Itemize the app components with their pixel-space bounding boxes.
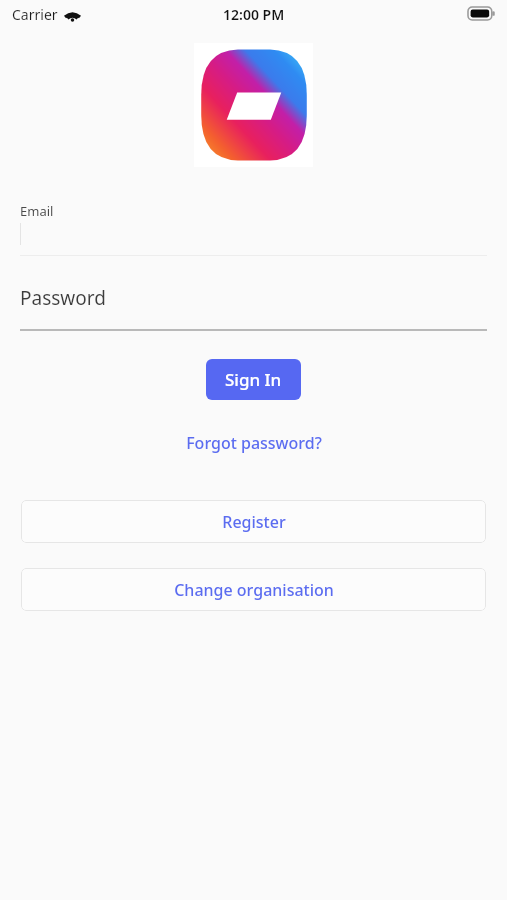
staticText: Forgot password? <box>186 432 322 454</box>
button[interactable]: Email <box>20 196 487 255</box>
other: Battery full <box>468 7 495 20</box>
staticText: Email <box>20 202 54 220</box>
button[interactable]: Register <box>21 500 486 543</box>
staticText: Change organisation <box>174 579 334 601</box>
staticText: Register <box>222 511 286 533</box>
other: Wi-Fi <box>65 8 80 23</box>
button[interactable]: Change organisation <box>21 568 486 611</box>
other: App logo <box>196 46 312 164</box>
staticText: 12:00 PM <box>223 5 285 24</box>
staticText: Carrier <box>12 5 58 24</box>
staticText: Password <box>20 285 106 311</box>
button[interactable]: Sign In <box>206 359 301 400</box>
staticText: Sign In <box>225 368 282 391</box>
button[interactable]: Forgot password? <box>0 428 507 458</box>
button[interactable]: Password <box>20 266 487 329</box>
